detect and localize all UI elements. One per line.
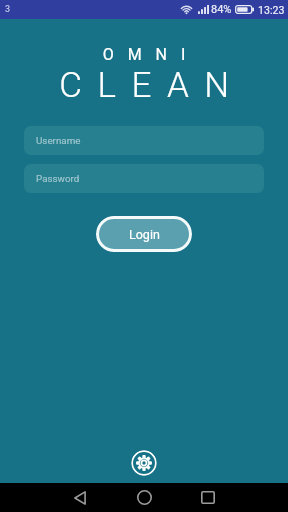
staticText: Username xyxy=(36,135,81,146)
staticText: Password xyxy=(36,173,80,184)
button[interactable]: Back xyxy=(60,483,100,512)
button[interactable]: Recents xyxy=(188,483,228,512)
button[interactable]: Settings xyxy=(131,450,157,476)
staticText: 84% xyxy=(211,3,232,16)
button[interactable]: Password xyxy=(24,164,264,193)
button[interactable]: Home xyxy=(124,483,164,512)
staticText: 3 xyxy=(5,4,11,15)
staticText: 13:23 xyxy=(258,4,285,16)
staticText: Login xyxy=(129,227,160,242)
staticText: CLEAN xyxy=(8,65,288,106)
staticText: OMNI xyxy=(7,45,288,64)
button[interactable]: Username xyxy=(24,126,264,155)
button[interactable]: Login xyxy=(96,216,192,252)
